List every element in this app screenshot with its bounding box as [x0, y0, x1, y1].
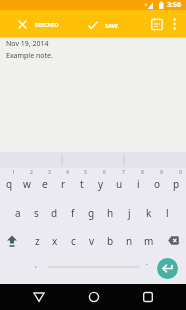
staticText: l [166, 206, 169, 220]
staticText: u [116, 177, 123, 191]
staticText: 1 [12, 169, 15, 175]
button[interactable]: x [46, 233, 64, 248]
button[interactable]: n [120, 233, 139, 248]
staticText: 6 [103, 169, 106, 175]
button[interactable]: e [36, 176, 54, 191]
button[interactable]: a [9, 205, 27, 220]
staticText: d [51, 206, 58, 220]
staticText: g [88, 206, 95, 220]
button[interactable]: w [18, 176, 36, 191]
button[interactable]: o [148, 176, 167, 191]
button[interactable]: h [101, 205, 120, 220]
staticText: b [107, 234, 114, 248]
staticText: 0 [179, 169, 182, 175]
button[interactable] [132, 284, 163, 310]
button[interactable]: s [27, 205, 45, 220]
button[interactable]: k [139, 205, 158, 220]
button[interactable]: t [72, 176, 91, 191]
button[interactable]: r [54, 176, 72, 191]
staticText: 5 [84, 169, 87, 175]
button[interactable]: g [82, 205, 101, 220]
button[interactable]: d [45, 205, 63, 220]
button[interactable] [78, 284, 109, 310]
staticText: o [154, 177, 161, 191]
button[interactable]: z [28, 233, 46, 248]
staticText: 9 [160, 169, 163, 175]
staticText: x [52, 234, 58, 248]
button[interactable]: q [0, 176, 18, 191]
button[interactable] [24, 284, 54, 310]
staticText: q [6, 177, 13, 191]
staticText: z [35, 234, 40, 248]
staticText: SAVE [105, 22, 118, 29]
button[interactable]: v [82, 233, 101, 248]
staticText: r [61, 177, 66, 191]
staticText: w [23, 177, 31, 191]
staticText: m [144, 234, 154, 248]
button[interactable] [157, 258, 178, 279]
staticText: a [15, 206, 21, 220]
staticText: y [98, 177, 104, 191]
button[interactable]: i [129, 176, 148, 191]
staticText: f [71, 206, 75, 220]
staticText: . [146, 258, 148, 268]
staticText: i [137, 177, 140, 191]
button[interactable]: SAVE [88, 21, 118, 29]
staticText: 4 [66, 169, 69, 175]
staticText: h [107, 206, 114, 220]
staticText: p [173, 177, 180, 191]
staticText: Example note. [6, 51, 53, 61]
staticText: 2 [30, 169, 33, 175]
staticText: DISCARD [35, 21, 59, 28]
button[interactable] [0, 233, 28, 248]
button[interactable]: f [63, 205, 82, 220]
staticText: 7 [122, 169, 125, 175]
button[interactable] [158, 233, 186, 248]
staticText: e [42, 177, 48, 191]
button[interactable] [47, 260, 140, 274]
button[interactable]: c [64, 233, 82, 248]
staticText: 8 [141, 169, 144, 175]
staticText: t [80, 177, 84, 191]
button[interactable]: DISCARD [18, 20, 59, 29]
button[interactable]: j [120, 205, 139, 220]
button[interactable]: m [139, 233, 158, 248]
staticText: 3:56 [167, 0, 181, 10]
staticText: k [146, 206, 152, 220]
button[interactable]: p [167, 176, 186, 191]
staticText: j [128, 206, 131, 220]
staticText: 3 [48, 169, 51, 175]
staticText: Nov 19, 2014 [6, 39, 49, 49]
staticText: s [34, 206, 39, 220]
staticText: n [126, 234, 133, 248]
staticText: v [89, 234, 95, 248]
button[interactable] [149, 16, 165, 32]
staticText: , [35, 260, 37, 270]
button[interactable]: b [101, 233, 120, 248]
staticText: c [71, 234, 76, 248]
button[interactable]: y [91, 176, 110, 191]
button[interactable] [168, 17, 181, 30]
button[interactable]: l [158, 205, 177, 220]
button[interactable]: u [110, 176, 129, 191]
